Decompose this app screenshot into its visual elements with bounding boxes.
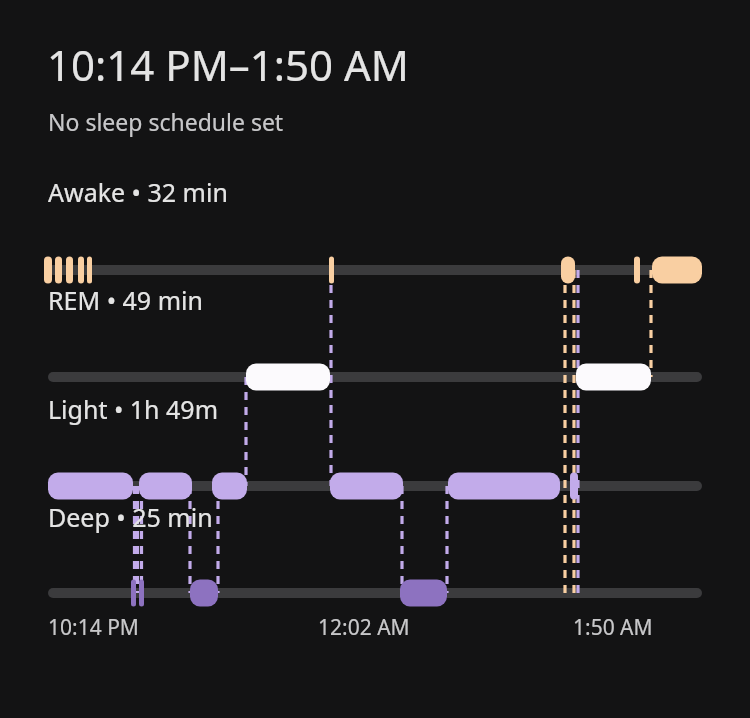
- staticText: 10:14 PM: [48, 613, 139, 642]
- button[interactable]: 10:14 PM–1:50 AM: [47, 36, 409, 93]
- staticText: 12:02 AM: [318, 613, 410, 642]
- button[interactable]: Deep • 25 min: [48, 500, 213, 534]
- button[interactable]: Sleep stage hypnogram chart: [0, 0, 750, 718]
- button[interactable]: Awake • 32 min: [48, 175, 228, 209]
- staticText: 1:50 AM: [573, 613, 653, 642]
- button[interactable]: REM • 49 min: [48, 283, 203, 317]
- button[interactable]: Light • 1h 49m: [48, 392, 219, 426]
- staticText: No sleep schedule set: [48, 106, 284, 137]
